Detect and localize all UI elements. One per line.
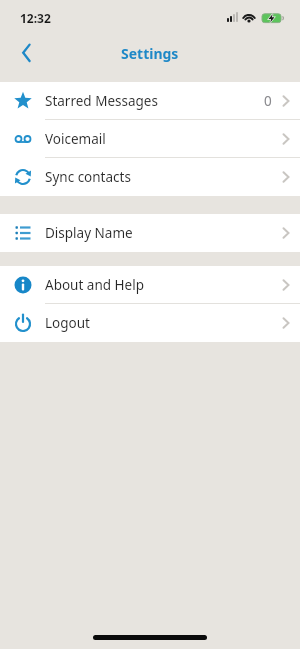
button[interactable]: Voicemail [0,120,300,158]
button[interactable]: Logout [0,304,300,342]
staticText: Settings [121,44,179,63]
staticText: Logout [45,314,90,332]
button[interactable]: Starred Messages [0,82,300,120]
button[interactable] [12,38,40,68]
staticText: 0 [264,92,272,110]
button[interactable]: About and Help [0,266,300,304]
staticText: 12:32 [20,10,51,26]
staticText: Voicemail [45,130,106,148]
button[interactable]: Display Name [0,214,300,252]
button[interactable]: Sync contacts [0,158,300,196]
staticText: Display Name [45,224,133,242]
staticText: About and Help [45,276,144,294]
staticText: Starred Messages [45,92,158,110]
staticText: Sync contacts [45,168,131,186]
